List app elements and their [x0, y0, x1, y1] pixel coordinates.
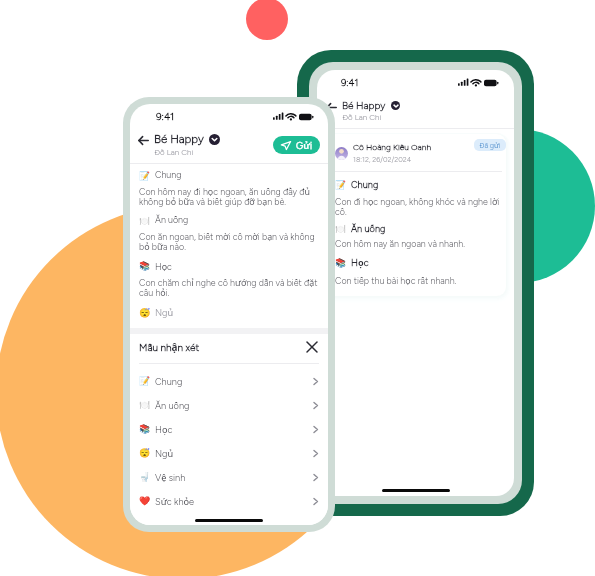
staticText: Gửi — [296, 139, 312, 152]
staticText: 📝 — [139, 171, 151, 181]
staticText: Con đi học ngoan, không khóc và nghe lời… — [335, 195, 502, 217]
button[interactable]: 😴 — [130, 441, 328, 465]
button[interactable]: ❤️ — [130, 489, 328, 513]
staticText: Chung — [155, 170, 182, 181]
button[interactable]: Close — [304, 339, 320, 355]
button[interactable]: Back — [138, 132, 149, 148]
staticText: 🍽 — [335, 224, 347, 234]
staticText: 📚 — [139, 424, 151, 435]
staticText: Chung — [351, 179, 379, 190]
staticText: Con tiếp thu bài học rất nhanh. — [335, 274, 457, 286]
button[interactable]: Gửi — [273, 136, 320, 154]
staticText: 📝 — [335, 180, 347, 190]
staticText: Cô Hoàng Kiều Oanh — [353, 142, 432, 152]
staticText: Bé Happy — [342, 99, 386, 111]
staticText: Ăn uống — [351, 223, 386, 234]
staticText: Đỗ Lan Chi — [342, 112, 382, 122]
staticText: Ăn uống — [155, 215, 189, 226]
staticText: 9:41 — [341, 77, 359, 88]
staticText: 18:12, 26/02/2024 — [353, 155, 412, 164]
staticText: 9:41 — [156, 110, 175, 122]
staticText: 📝 — [139, 376, 151, 387]
staticText: Học — [155, 423, 173, 436]
button[interactable]: 📚 — [130, 417, 328, 441]
staticText: Vệ sinh — [155, 471, 186, 484]
staticText: 🍽 — [139, 216, 151, 226]
button[interactable]: 📝 — [130, 369, 328, 393]
staticText: Học — [155, 260, 172, 272]
staticText: Ngủ — [155, 306, 174, 319]
staticText: 😴 — [139, 307, 151, 318]
staticText: Học — [351, 256, 369, 269]
staticText: 🍽 — [139, 400, 151, 411]
staticText: Bé Happy — [154, 132, 204, 146]
staticText: ❤️ — [139, 496, 151, 507]
staticText: Ăn uống — [155, 400, 190, 411]
staticText: 📚 — [335, 258, 347, 268]
button[interactable]: 🚽 — [130, 465, 328, 489]
staticText: Ngủ — [155, 447, 174, 460]
staticText: Mẫu nhận xét — [139, 340, 200, 354]
staticText: Sức khỏe — [155, 495, 195, 508]
staticText: Con chăm chỉ nghe cô hướng dẫn và biết đ… — [139, 276, 322, 299]
staticText: Con ăn ngoan, biết mời cô mời bạn và khô… — [139, 230, 322, 253]
staticText: Con hôm nay ăn ngoan và nhanh. — [335, 239, 465, 250]
button[interactable]: 🍽 — [130, 393, 328, 417]
staticText: Con hôm nay đi học ngoan, ăn uống đầy đủ… — [139, 185, 322, 208]
staticText: Đã gửi — [479, 140, 501, 150]
button[interactable]: Back — [326, 99, 337, 115]
staticText: Chung — [155, 376, 183, 387]
staticText: 🚽 — [139, 472, 151, 483]
staticText: Đỗ Lan Chi — [154, 147, 194, 157]
staticText: 😴 — [139, 448, 151, 459]
staticText: 📚 — [139, 261, 151, 271]
